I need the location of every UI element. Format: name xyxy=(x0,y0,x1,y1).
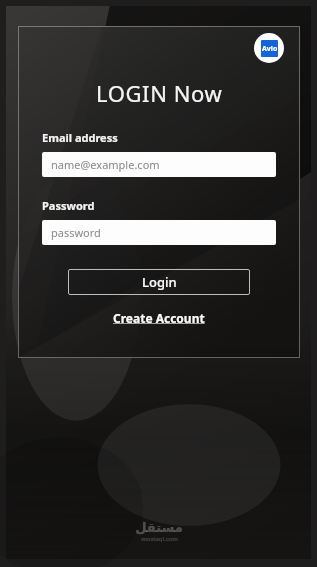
staticText: password xyxy=(51,225,101,240)
staticText: name@example.com xyxy=(51,157,160,172)
button[interactable]: Login xyxy=(68,269,250,295)
button[interactable]: Avio logo xyxy=(254,33,284,63)
button[interactable]: Password input xyxy=(42,220,276,245)
button[interactable]: Email address input xyxy=(42,152,276,177)
staticText: Avio xyxy=(262,44,278,54)
staticText: مستقل xyxy=(135,520,183,535)
staticText: Email address xyxy=(42,130,118,145)
staticText: LOGIN Now xyxy=(96,78,223,108)
staticText: mostaql.com xyxy=(141,535,178,543)
staticText: Login xyxy=(142,273,177,291)
staticText: Password xyxy=(42,198,95,213)
button[interactable]: Create Account xyxy=(110,307,208,329)
staticText: Create Account xyxy=(113,310,205,326)
